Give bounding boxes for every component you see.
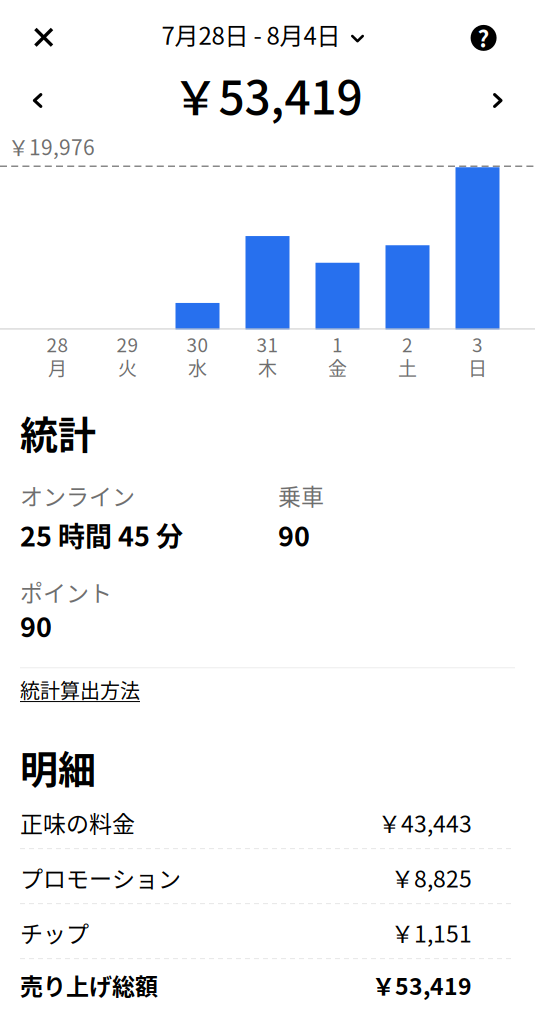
button[interactable]: Previous week (15, 78, 59, 122)
staticText: 売り上げ総額 (20, 968, 158, 1002)
staticText: 90 (20, 606, 52, 645)
staticText: 2 (402, 330, 413, 358)
button[interactable]: 統計算出方法 (20, 668, 140, 738)
staticText: 日 (468, 354, 487, 381)
button[interactable]: Next week (476, 78, 520, 122)
staticText: 25 時間 45 分 (20, 515, 183, 554)
staticText: 土 (398, 354, 417, 381)
staticText: ￥8,825 (391, 861, 472, 894)
staticText: ￥19,976 (8, 131, 95, 161)
staticText: ￥53,419 (372, 968, 472, 1002)
staticText: 統計算出方法 (20, 675, 140, 704)
staticText: ? (478, 21, 490, 54)
button[interactable]: チップ (0, 904, 535, 958)
staticText: 水 (188, 354, 207, 381)
staticText: 28 (46, 330, 68, 358)
staticText: ￥43,443 (378, 806, 472, 839)
staticText: 火 (118, 354, 137, 381)
staticText: 7月28日 - 8月4日 (161, 17, 340, 52)
staticText: 統計 (20, 405, 96, 460)
staticText: 30 (186, 330, 208, 358)
staticText: チップ (20, 916, 89, 949)
staticText: 金 (328, 354, 347, 381)
staticText: 1 (332, 330, 343, 358)
button[interactable]: 売り上げ総額 (0, 959, 535, 1013)
button[interactable]: Help (460, 14, 508, 62)
staticText: 乗車 (278, 479, 324, 512)
staticText: 月 (48, 354, 67, 381)
button[interactable]: Close (20, 13, 68, 61)
staticText: 29 (116, 330, 138, 358)
staticText: ￥53,419 (172, 61, 362, 128)
staticText: 90 (278, 515, 310, 554)
staticText: 3 (472, 330, 483, 358)
staticText: 明細 (20, 739, 96, 794)
staticText: ￥1,151 (391, 916, 472, 949)
staticText: 正味の料金 (20, 806, 135, 839)
button[interactable]: 7月28日 - 8月4日 (153, 11, 372, 57)
staticText: ポイント (20, 575, 112, 608)
button[interactable]: 正味の料金 (0, 794, 535, 848)
staticText: 31 (256, 330, 278, 358)
staticText: プロモーション (20, 861, 181, 894)
staticText: 木 (258, 354, 277, 381)
button[interactable]: プロモーション (0, 849, 535, 903)
staticText: オンライン (20, 479, 135, 512)
